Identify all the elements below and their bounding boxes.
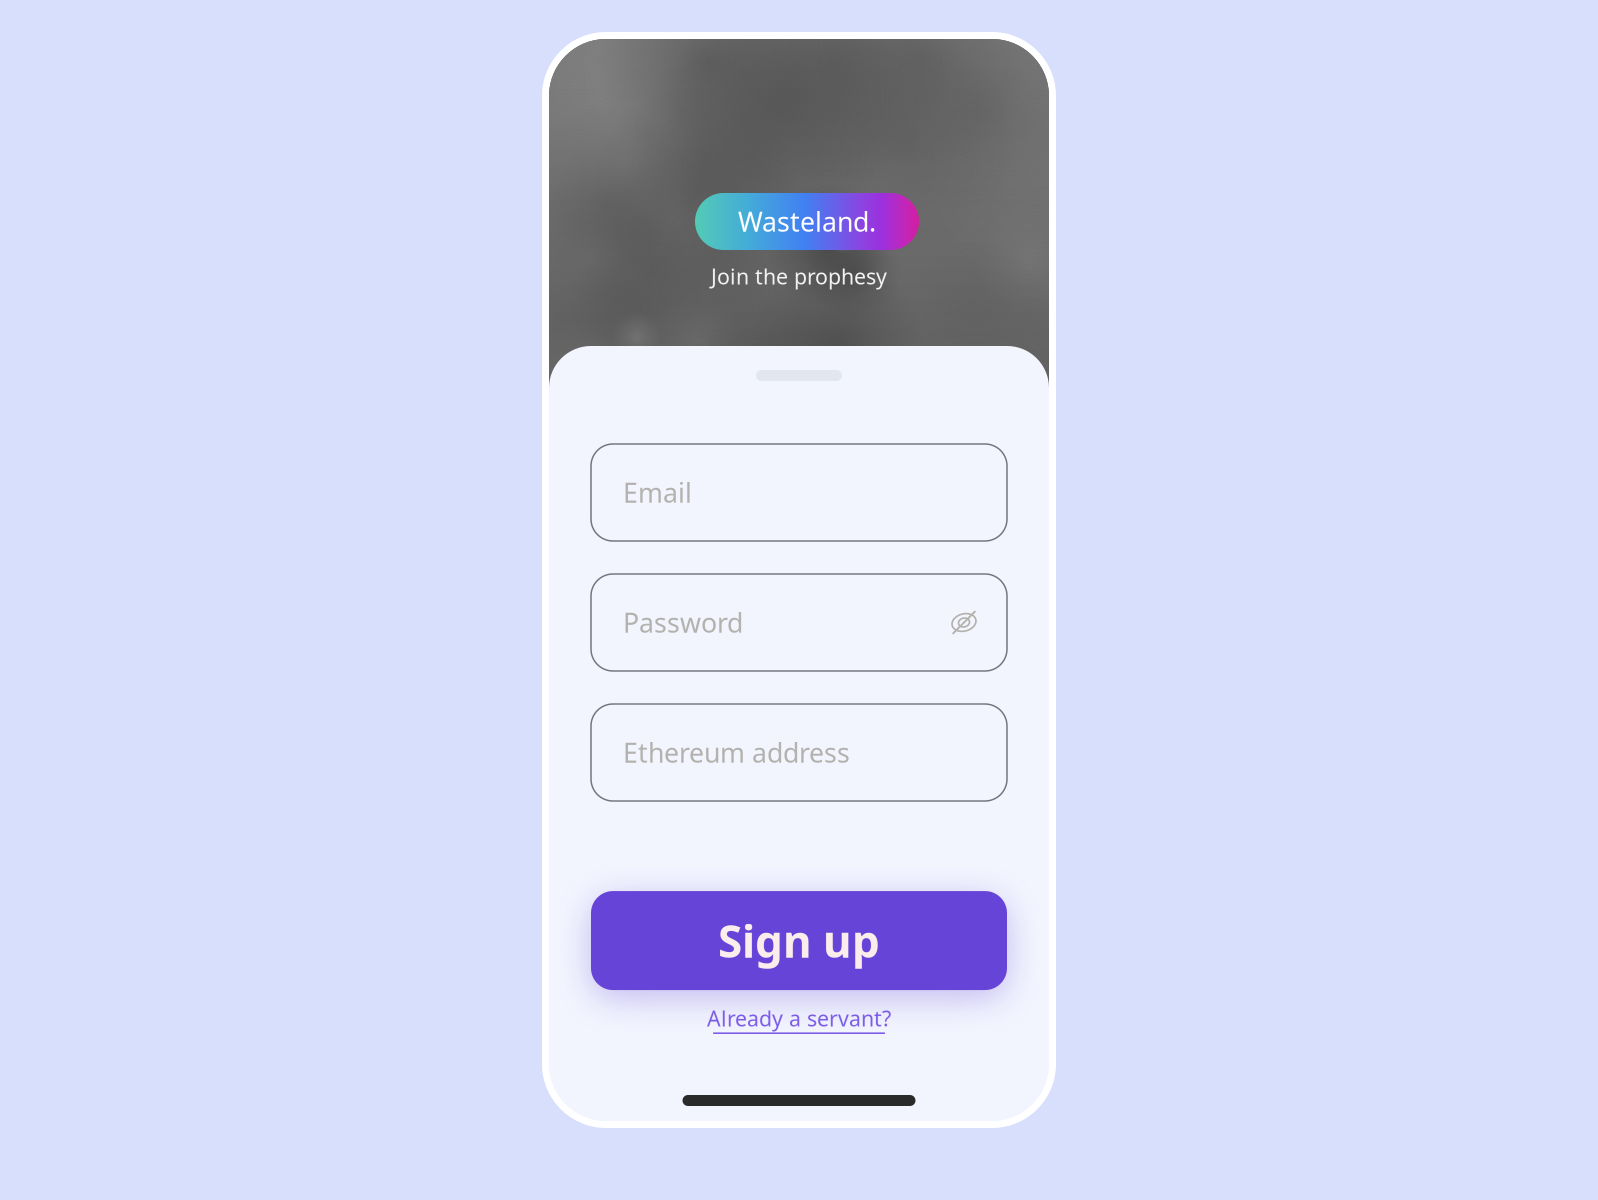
button[interactable]: Show password <box>951 609 977 635</box>
button[interactable]: Already a servant? <box>707 1004 891 1034</box>
staticText: Already a servant? <box>707 1004 891 1032</box>
staticText: Email <box>623 475 692 510</box>
button[interactable]: Password <box>591 574 1007 671</box>
staticText: Ethereum address <box>623 735 850 770</box>
staticText: Wasteland. <box>738 204 876 239</box>
button[interactable]: Email <box>591 444 1007 541</box>
staticText: Sign up <box>718 911 880 970</box>
staticText: Password <box>623 605 743 640</box>
staticText: Join the prophesy <box>711 262 887 290</box>
button[interactable]: Ethereum address <box>591 704 1007 801</box>
button[interactable]: Sign up <box>591 891 1007 990</box>
